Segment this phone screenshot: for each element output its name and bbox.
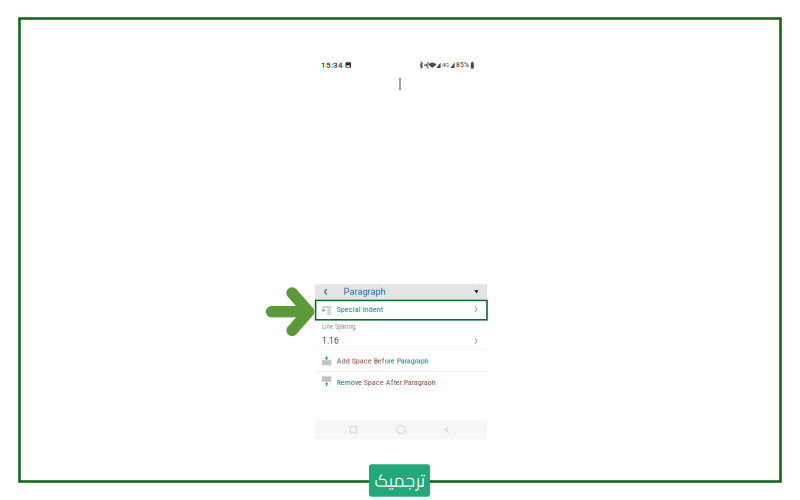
staticText: Special Indent: [337, 305, 383, 314]
staticText: ترجمیک: [374, 464, 425, 497]
staticText: 85%: [456, 61, 469, 69]
button[interactable]: Home: [392, 420, 410, 439]
staticText: 1.16: [322, 336, 339, 346]
button[interactable]: Back: [439, 420, 458, 439]
staticText: Remove Space After Paragraph: [337, 377, 436, 387]
staticText: 4G: [442, 61, 449, 68]
button[interactable]: Line Spacing:: [315, 320, 487, 349]
button[interactable]: Paragraph: [315, 284, 487, 299]
button[interactable]: Recent apps: [344, 420, 363, 439]
staticText: 15:34: [321, 60, 343, 70]
button[interactable]: Remove Space After Paragraph: [315, 372, 487, 393]
staticText: Add Space Before Paragraph: [337, 356, 429, 365]
button[interactable]: Special Indent: [315, 299, 487, 319]
staticText: Line Spacing:: [322, 322, 357, 330]
staticText: Paragraph: [343, 286, 385, 297]
button[interactable]: Add Space Before Paragraph: [315, 350, 487, 371]
